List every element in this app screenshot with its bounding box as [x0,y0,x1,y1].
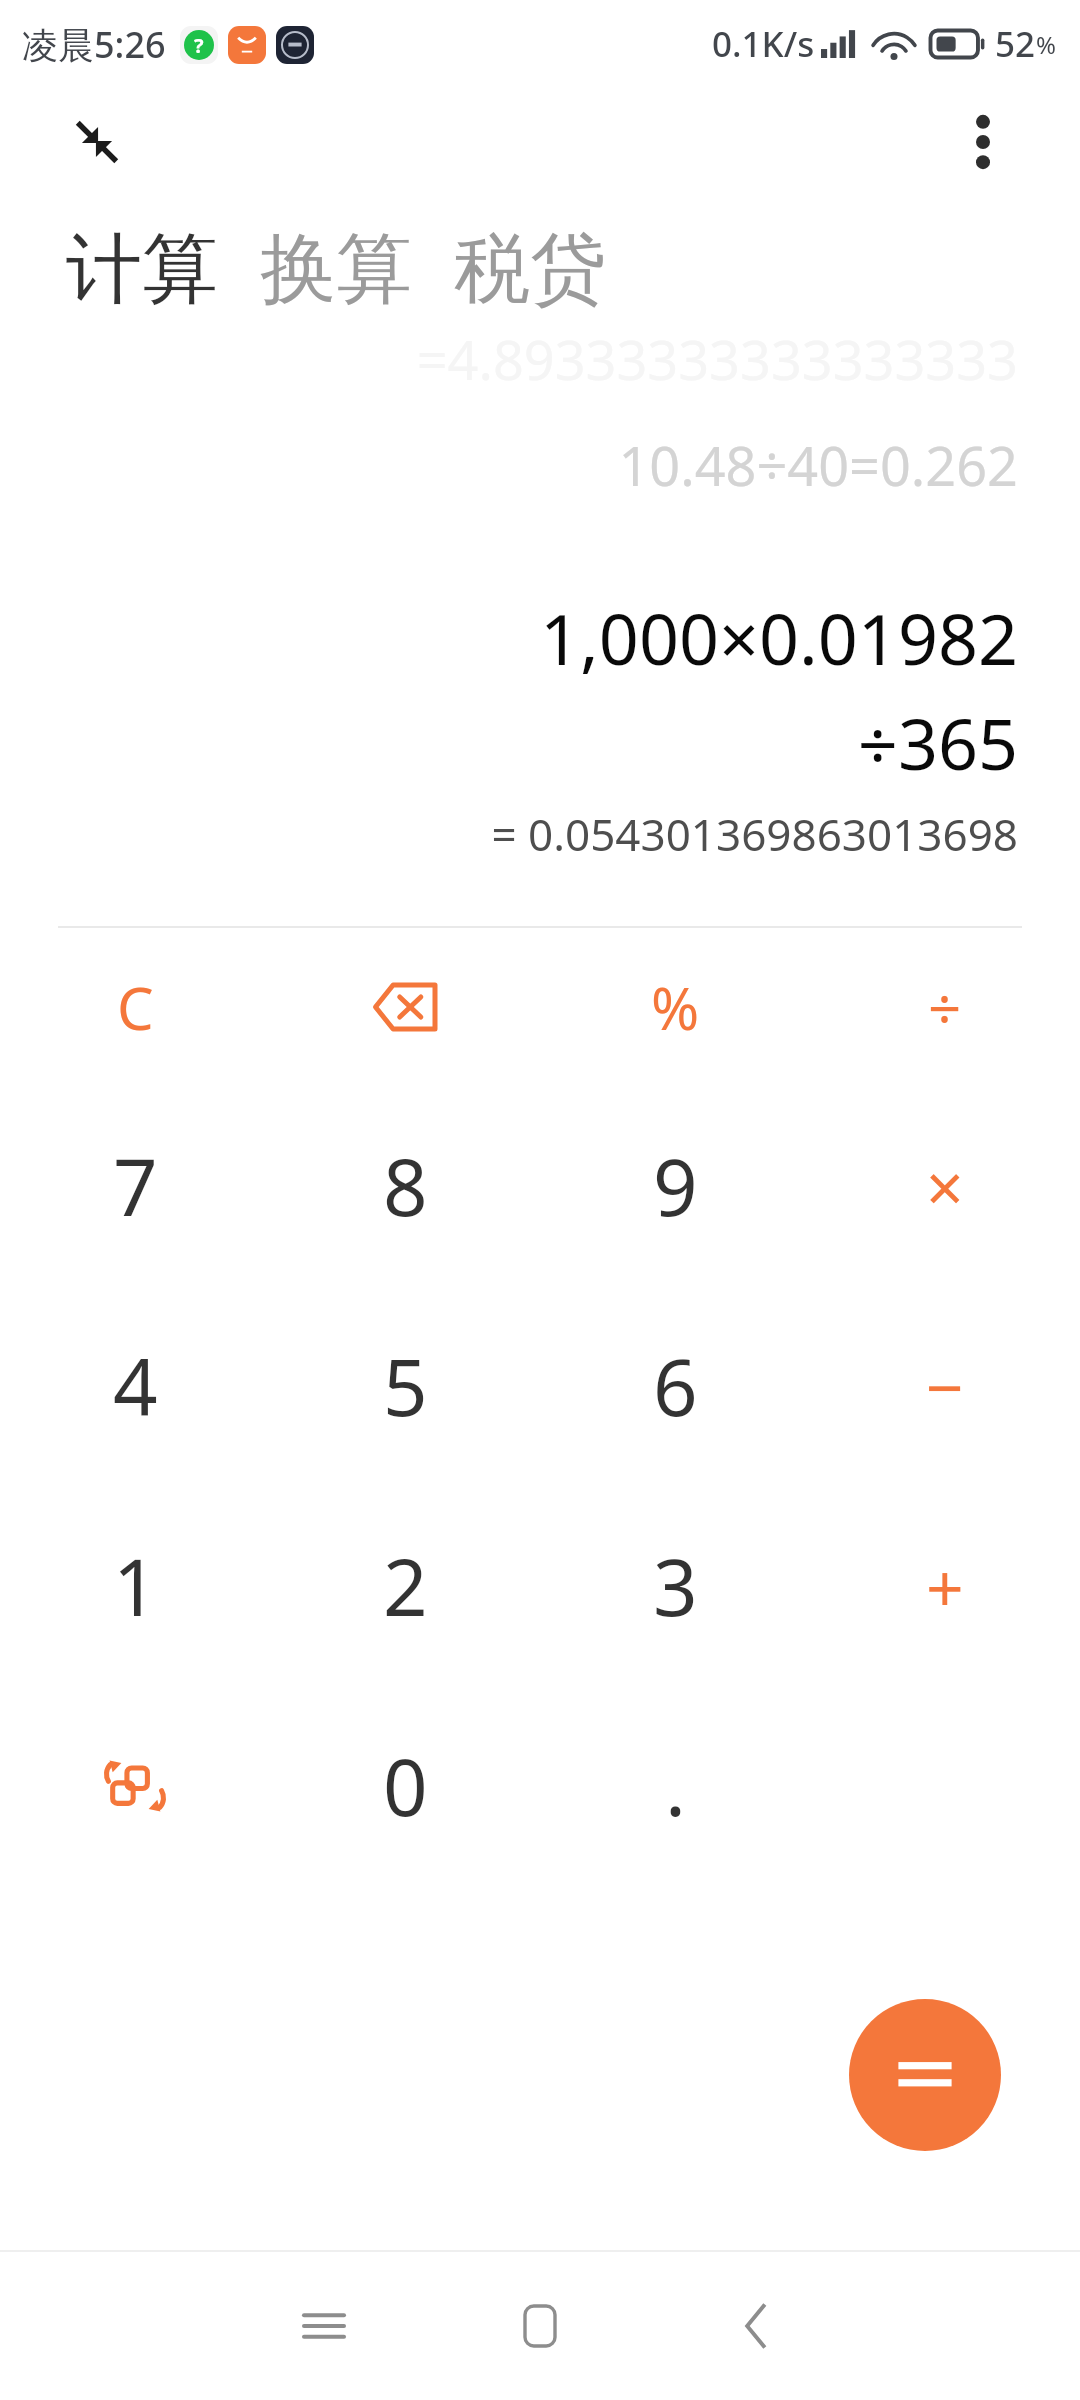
staticText: 4 [113,1333,158,1439]
staticText: 0 [383,1733,428,1839]
button[interactable]: 8 [270,1086,540,1286]
staticText: 2 [383,1533,428,1639]
staticText: ? [194,32,204,59]
button[interactable]: Backspace [270,928,540,1086]
button[interactable]: Clear [0,928,270,1086]
staticText: 凌晨5:26 [22,20,166,69]
staticText: + [926,1541,964,1631]
button[interactable]: Percent [540,928,810,1086]
staticText: 1 [113,1533,158,1639]
staticText: % [1036,28,1056,61]
staticText: 税贷 [454,222,606,318]
button[interactable]: 5 [270,1286,540,1486]
button[interactable]: 3 [540,1486,810,1686]
button[interactable]: Home [432,2252,648,2400]
staticText: 10.48÷40=0.262 [618,428,1018,502]
button[interactable]: Equals [849,1999,1001,2151]
button[interactable]: 9 [540,1086,810,1286]
staticText: ÷365 [857,695,1018,790]
staticText: 6 [653,1333,698,1439]
button[interactable]: . [540,1686,810,1886]
staticText: 计算 [66,222,218,318]
staticText: 5 [383,1333,428,1439]
button[interactable]: Divide [810,928,1080,1086]
button[interactable]: 2 [270,1486,540,1686]
button[interactable]: 4 [0,1286,270,1486]
button[interactable]: 6 [540,1286,810,1486]
staticText: − [926,1341,964,1431]
staticText: 1,000×0.01982 [540,590,1018,685]
button[interactable]: Convert [0,1686,270,1886]
button[interactable]: More options [928,88,1038,196]
staticText: 0.1K/s [712,20,815,68]
button[interactable]: Subtract [810,1286,1080,1486]
staticText: ÷ [928,968,962,1047]
staticText: 换算 [260,222,412,318]
button[interactable]: Recents [216,2252,432,2400]
button[interactable]: 0 [270,1686,540,1886]
staticText: × [926,1141,964,1231]
button[interactable]: 税贷 [450,218,610,322]
staticText: 7 [113,1133,158,1239]
staticText: 9 [653,1133,698,1239]
staticText: 8 [383,1133,428,1239]
button[interactable]: 1 [0,1486,270,1686]
button[interactable]: Collapse [42,88,152,196]
button[interactable]: 7 [0,1086,270,1286]
staticText: =4.89333333333333333 [416,322,1018,396]
button[interactable]: Multiply [810,1086,1080,1286]
button[interactable]: 换算 [256,218,416,322]
staticText: = 0.054301369863013698 [491,804,1018,864]
button[interactable]: 计算 [62,218,222,322]
staticText: 52 [995,20,1036,68]
staticText: . [665,1733,686,1839]
staticText: C [117,968,154,1047]
button[interactable]: Back [648,2252,864,2400]
staticText: 3 [653,1533,698,1639]
button[interactable]: Add [810,1486,1080,1686]
staticText: % [651,968,700,1047]
